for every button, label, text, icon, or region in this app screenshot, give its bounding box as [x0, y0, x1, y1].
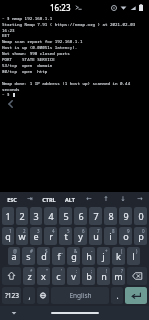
- staticText: 6: [78, 210, 84, 222]
- staticText: @: [13, 248, 18, 254]
- button[interactable]: Tab: [23, 193, 37, 205]
- staticText: s: [26, 250, 31, 262]
- button[interactable]: x: [37, 267, 50, 285]
- button[interactable]: ESC: [2, 193, 21, 205]
- staticText: ~ $ nmap 192.168.1.1: [2, 16, 147, 22]
- button[interactable]: q: [2, 227, 14, 245]
- staticText: CTRL: [42, 196, 56, 203]
- staticText: b: [86, 270, 92, 282]
- button[interactable]: Left: [81, 193, 96, 205]
- staticText: ←: [86, 195, 92, 203]
- button[interactable]: ?123: [2, 287, 21, 304]
- staticText: ): [136, 248, 138, 254]
- button[interactable]: p: [134, 227, 147, 245]
- button[interactable]: f: [52, 247, 65, 265]
- staticText: 16:23: [50, 2, 71, 13]
- staticText: 80/tcp open http: [2, 69, 147, 75]
- button[interactable]: d: [37, 247, 50, 265]
- button[interactable]: t: [59, 227, 72, 245]
- button[interactable]: 1: [2, 207, 14, 225]
- staticText: ALT: [65, 196, 75, 203]
- button[interactable]: w: [16, 227, 28, 245]
- button[interactable]: 5: [59, 207, 72, 225]
- staticText: d: [41, 250, 47, 262]
- button[interactable]: k: [112, 247, 125, 265]
- button[interactable]: .: [111, 287, 123, 304]
- staticText: w: [18, 230, 26, 242]
- button[interactable]: Up: [98, 193, 113, 205]
- button[interactable]: z: [23, 267, 35, 285]
- button[interactable]: Right: [132, 193, 147, 205]
- staticText: ↓: [120, 195, 126, 203]
- button[interactable]: m: [112, 267, 125, 285]
- button[interactable]: n: [97, 267, 110, 285]
- button[interactable]: Shift: [2, 267, 21, 285]
- staticText: ~ $: [2, 92, 13, 98]
- button[interactable]: j: [97, 247, 110, 265]
- button[interactable]: u: [89, 227, 102, 245]
- staticText: ,: [28, 290, 31, 301]
- button[interactable]: b: [82, 267, 95, 285]
- button[interactable]: Hide keyboard: [8, 307, 20, 319]
- staticText: v: [71, 270, 76, 282]
- button[interactable]: 4: [44, 207, 57, 225]
- staticText: #: [30, 248, 33, 254]
- staticText: ⇥: [27, 195, 33, 203]
- button[interactable]: Back: [4, 97, 18, 111]
- button[interactable]: i: [104, 227, 117, 245]
- staticText: 6: [82, 228, 85, 234]
- staticText: q: [5, 230, 11, 242]
- button[interactable]: s: [22, 247, 35, 265]
- button[interactable]: 9: [119, 207, 132, 225]
- button[interactable]: 0: [134, 207, 147, 225]
- staticText: 1: [5, 210, 11, 222]
- button[interactable]: Change language: [37, 287, 49, 304]
- button[interactable]: Down: [115, 193, 130, 205]
- button[interactable]: 3: [30, 207, 42, 225]
- button[interactable]: g: [67, 247, 80, 265]
- staticText: English: [69, 291, 92, 300]
- staticText: f: [57, 250, 61, 262]
- button[interactable]: c: [52, 267, 65, 285]
- button[interactable]: o: [119, 227, 132, 245]
- button[interactable]: l: [127, 247, 140, 265]
- button[interactable]: Enter: [125, 287, 147, 304]
- button[interactable]: r: [44, 227, 57, 245]
- staticText: ?: [121, 268, 123, 274]
- staticText: 2: [19, 210, 25, 222]
- staticText: +: [105, 248, 108, 254]
- staticText: r: [49, 230, 53, 242]
- staticText: a: [11, 250, 17, 262]
- button[interactable]: Backspace: [127, 267, 147, 285]
- button[interactable]: 7: [89, 207, 102, 225]
- button[interactable]: 8: [104, 207, 117, 225]
- staticText: _: [61, 248, 63, 254]
- button[interactable]: h: [82, 247, 95, 265]
- button[interactable]: a: [8, 247, 20, 265]
- button[interactable]: ALT: [61, 193, 79, 205]
- button[interactable]: 2: [16, 207, 28, 225]
- staticText: 7: [97, 228, 100, 234]
- staticText: m: [114, 270, 123, 282]
- button[interactable]: ,: [23, 287, 35, 304]
- button[interactable]: CTRL: [39, 193, 59, 205]
- staticText: 8: [108, 210, 114, 222]
- staticText: x: [41, 270, 46, 282]
- button[interactable]: 6: [74, 207, 87, 225]
- button[interactable]: y: [74, 227, 87, 245]
- staticText: c: [56, 270, 61, 282]
- staticText: 4: [52, 228, 55, 234]
- button[interactable]: e: [30, 227, 42, 245]
- staticText: 8: [112, 228, 115, 234]
- staticText: Not shown: 998 closed ports: [2, 51, 147, 57]
- button[interactable]: English: [51, 287, 109, 304]
- staticText: n: [101, 270, 107, 282]
- staticText: Nmap scan report for 192.168.1.1: [2, 39, 147, 45]
- staticText: 2: [23, 228, 26, 234]
- button[interactable]: v: [67, 267, 80, 285]
- staticText: $: [45, 248, 48, 254]
- staticText: PORT STATE SERVICE: [2, 57, 147, 63]
- staticText: 3: [37, 228, 40, 234]
- staticText: l: [132, 250, 135, 262]
